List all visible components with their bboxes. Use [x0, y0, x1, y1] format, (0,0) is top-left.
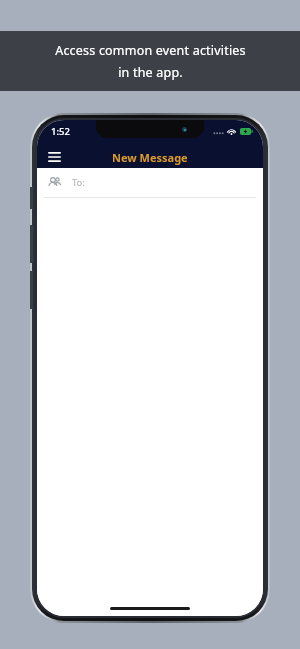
button[interactable]: To: [37, 168, 263, 197]
staticText: New Message [112, 150, 188, 165]
staticText: To: [72, 176, 85, 189]
staticText: in the app. [118, 64, 183, 81]
staticText: 1:52 [51, 125, 70, 138]
button[interactable]: Open navigation menu [44, 147, 64, 167]
staticText: Access common event activities [55, 42, 246, 59]
